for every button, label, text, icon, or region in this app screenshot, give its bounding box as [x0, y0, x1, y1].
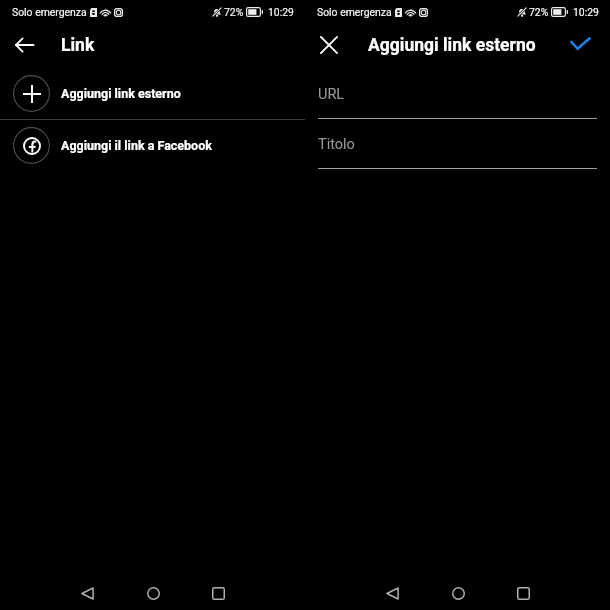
button[interactable]: Back [0, 24, 48, 68]
button[interactable]: Recents [196, 571, 240, 610]
button[interactable]: Recents [501, 571, 545, 610]
button[interactable]: Home [131, 571, 175, 610]
button[interactable]: Back [65, 571, 109, 610]
button[interactable]: Home [436, 571, 480, 610]
button[interactable]: URL [305, 86, 610, 119]
button[interactable]: Done [551, 24, 610, 68]
staticText: URL [318, 86, 345, 103]
staticText: 72% [529, 6, 549, 18]
button[interactable]: Close [305, 24, 353, 68]
staticText: 10:29 [573, 6, 599, 18]
staticText: 10:29 [268, 6, 294, 18]
staticText: Aggiungi link esterno [368, 35, 536, 56]
staticText: Aggiungi il link a Facebook [61, 138, 212, 153]
staticText: Aggiungi link esterno [61, 86, 181, 101]
button[interactable]: Titolo [305, 136, 610, 169]
staticText: Solo emergenza [12, 6, 87, 18]
staticText: 72% [224, 6, 244, 18]
staticText: Solo emergenza [317, 6, 392, 18]
staticText: Titolo [318, 136, 355, 153]
staticText: Link [61, 35, 95, 56]
button[interactable]: Back [370, 571, 414, 610]
button[interactable]: Aggiungi il link a Facebook [0, 120, 305, 171]
button[interactable]: Aggiungi link esterno [0, 68, 305, 119]
